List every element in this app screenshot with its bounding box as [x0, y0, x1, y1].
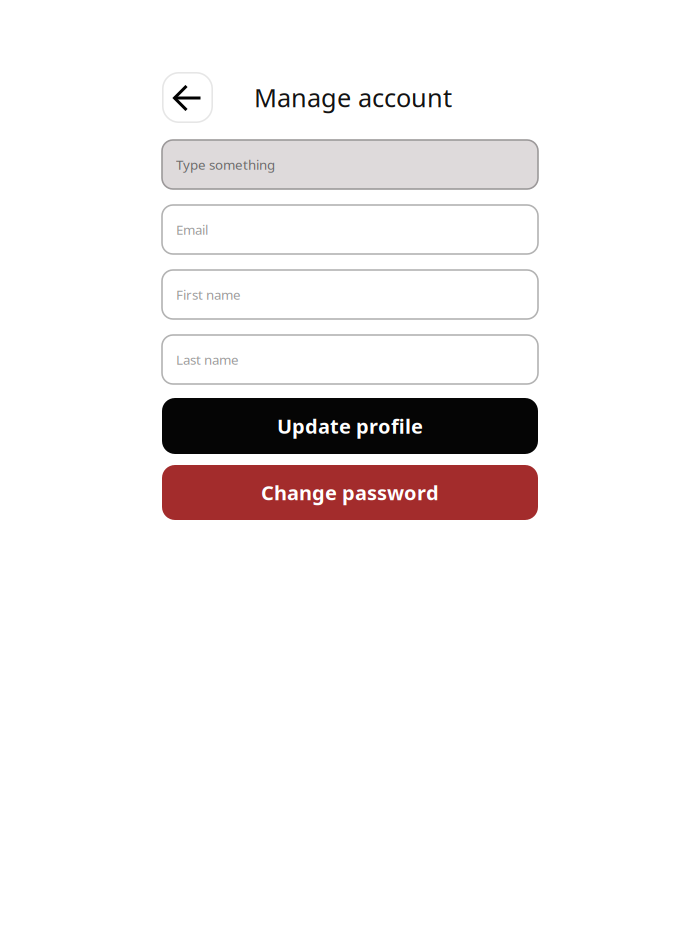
button[interactable]: Change password — [162, 465, 538, 520]
button[interactable]: Last name — [162, 335, 538, 384]
button[interactable]: Back — [162, 72, 213, 123]
button[interactable]: Type something — [162, 140, 538, 189]
button[interactable]: First name — [162, 270, 538, 319]
staticText: Type something — [176, 156, 275, 173]
staticText: Update profile — [277, 413, 423, 439]
button[interactable]: Update profile — [162, 398, 538, 454]
staticText: Manage account — [254, 81, 452, 114]
staticText: Email — [176, 221, 208, 238]
staticText: First name — [176, 286, 241, 303]
staticText: Change password — [261, 479, 439, 506]
button[interactable]: Email — [162, 205, 538, 254]
staticText: Last name — [176, 351, 239, 368]
